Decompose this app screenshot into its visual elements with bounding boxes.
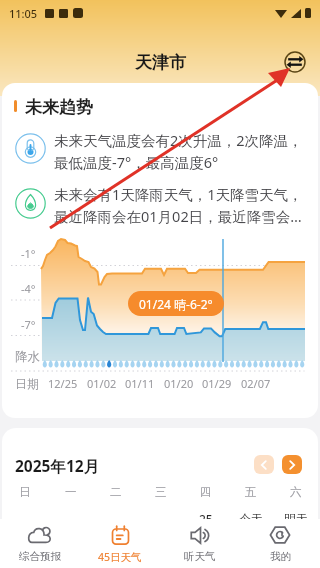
staticText: -4° xyxy=(21,281,36,296)
staticText: 01/02 xyxy=(87,376,117,391)
button[interactable]: 切换城市 xyxy=(280,47,310,77)
button[interactable]: 45日天气 xyxy=(80,519,160,568)
staticText: 01/20 xyxy=(164,376,194,391)
staticText: 五 xyxy=(245,485,257,499)
staticText: -1° xyxy=(21,246,36,261)
staticText: 01/11 xyxy=(125,376,155,391)
staticText: 综合预报 xyxy=(19,550,61,563)
staticText: 未来会有1天降雨天气，1天降雪天气， xyxy=(54,184,303,204)
staticText: 明天 xyxy=(284,511,308,526)
staticText: 01/29 xyxy=(202,376,232,391)
button[interactable]: 我的 xyxy=(240,519,320,568)
staticText: 今天 xyxy=(239,511,263,526)
staticText: 一 xyxy=(65,485,77,499)
staticText: 四 xyxy=(200,485,212,499)
staticText: 三 xyxy=(155,485,167,499)
staticText: 02/07 xyxy=(241,376,271,391)
staticText: 01/24 晴-6-2° xyxy=(139,296,213,312)
staticText: 日期 xyxy=(15,376,39,391)
staticText: 我的 xyxy=(270,550,291,563)
staticText: 11:05 xyxy=(9,6,38,21)
staticText: 45日天气 xyxy=(98,550,142,564)
staticText: 25 xyxy=(199,511,213,527)
staticText: 12/25 xyxy=(48,376,78,391)
staticText: 未来天气温度会有2次升温，2次降温， xyxy=(54,130,303,150)
staticText: 最低温度-7°，最高温度6° xyxy=(54,152,219,172)
staticText: 六 xyxy=(290,485,302,499)
staticText: 天津市 xyxy=(135,52,186,73)
staticText: 日 xyxy=(19,485,31,499)
staticText: 2025年12月 xyxy=(15,455,100,476)
staticText: -7° xyxy=(21,317,36,332)
staticText: 未来趋势 xyxy=(25,97,93,118)
staticText: 降水 xyxy=(15,349,40,365)
staticText: 最近降雨会在01月02日，最近降雪会… xyxy=(54,206,302,226)
button[interactable]: 听天气 xyxy=(160,519,240,568)
staticText: 二 xyxy=(110,485,122,499)
button[interactable]: 下个月 xyxy=(282,455,302,474)
button[interactable]: 上个月 xyxy=(254,455,274,474)
button[interactable]: 综合预报 xyxy=(0,519,80,568)
staticText: 听天气 xyxy=(184,550,216,563)
